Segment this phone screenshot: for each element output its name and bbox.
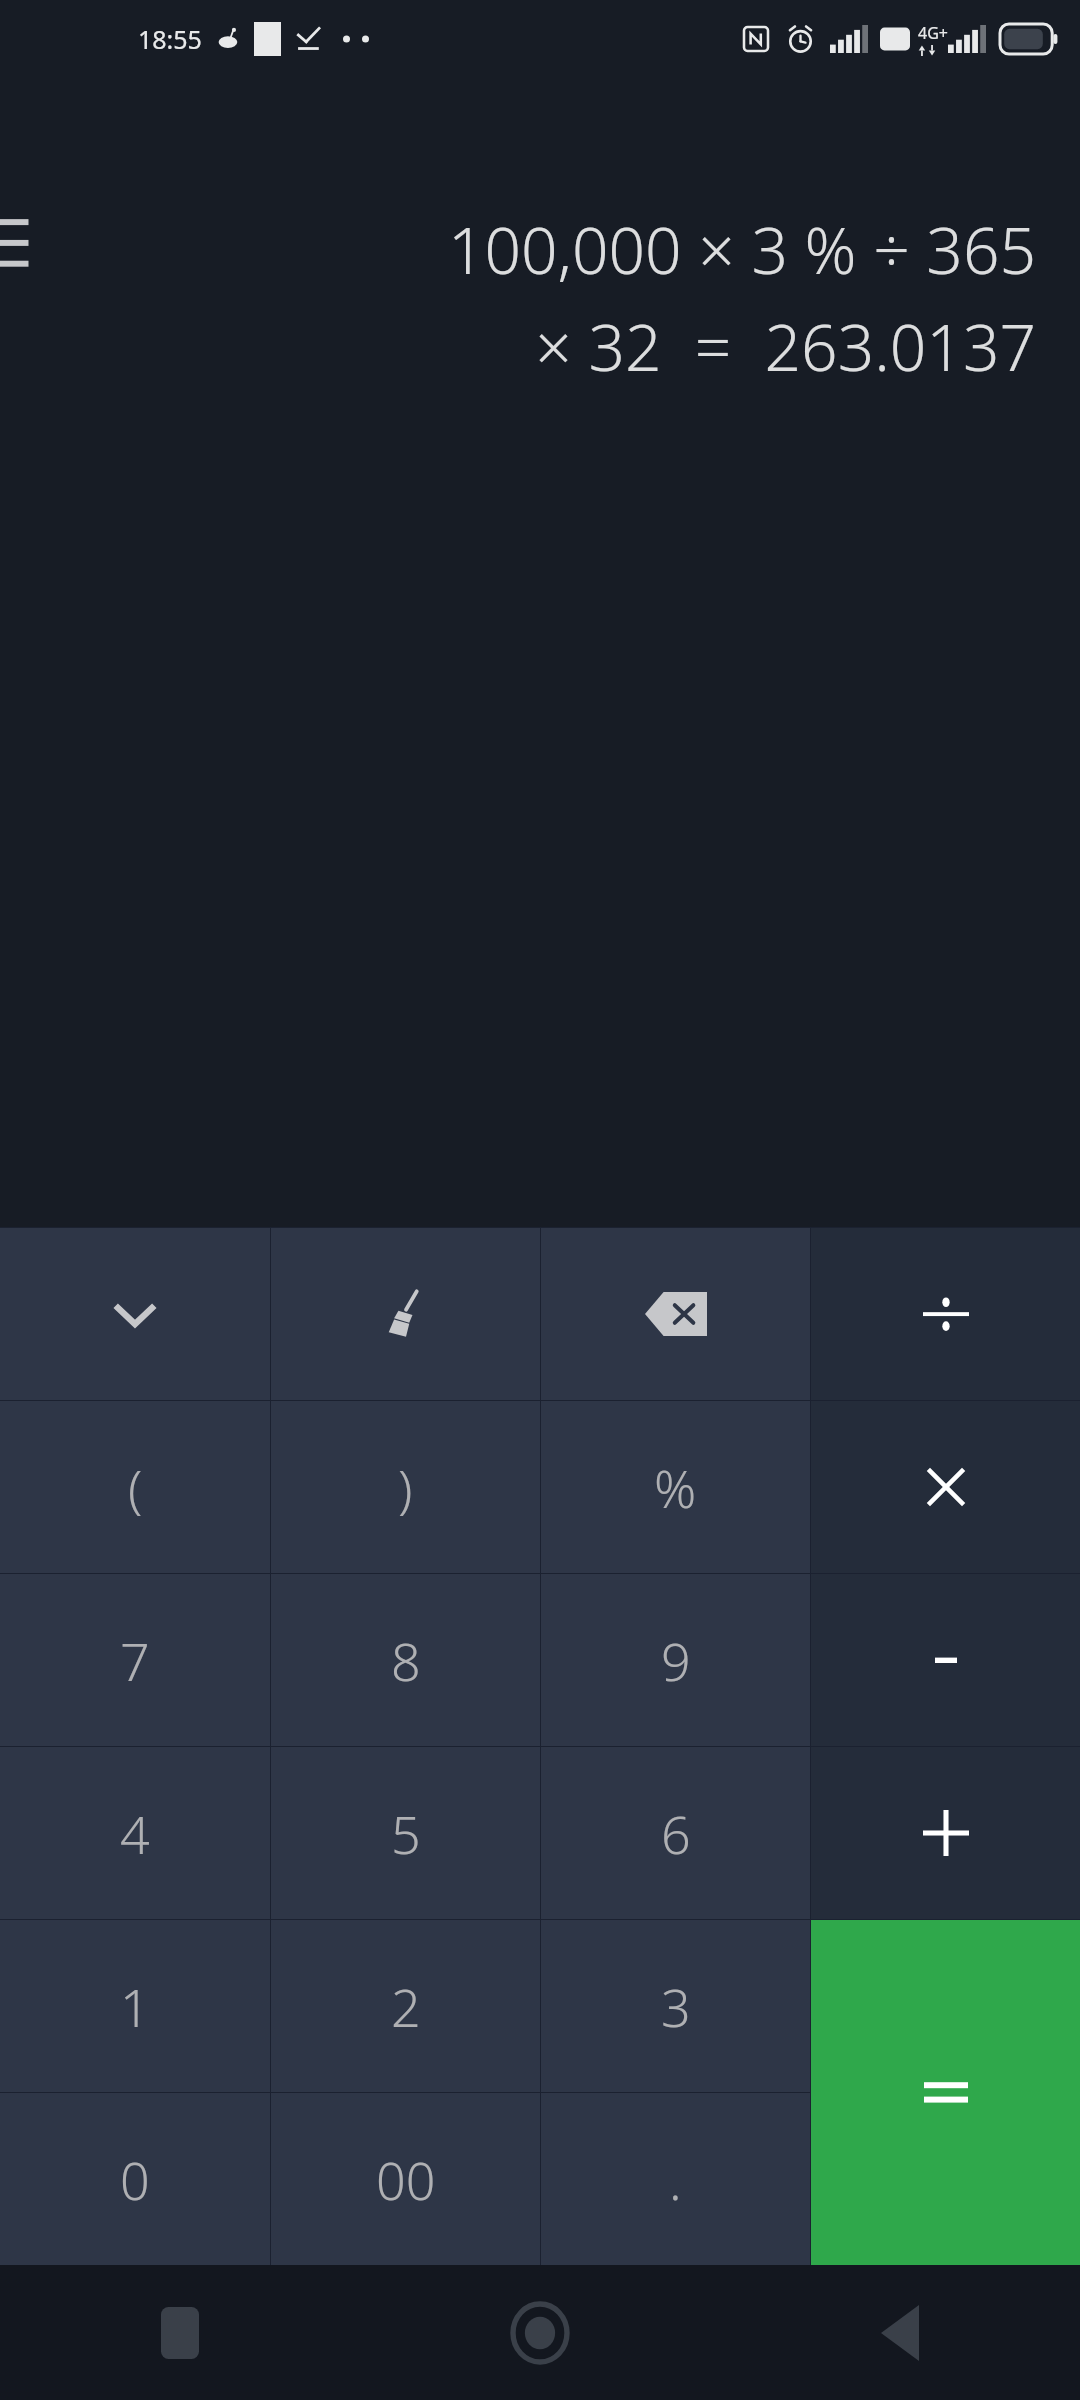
button[interactable]: Menu bbox=[0, 216, 30, 268]
staticText: ( bbox=[128, 1452, 143, 1523]
button[interactable]: Divide bbox=[811, 1228, 1080, 1400]
staticText: % bbox=[654, 1452, 697, 1523]
staticText: 100,000 × 3 % ÷ 365 bbox=[447, 206, 1036, 293]
button[interactable]: 00 bbox=[271, 2093, 540, 2265]
staticText: 8 bbox=[391, 1625, 421, 1696]
staticText: ) bbox=[398, 1452, 413, 1523]
button[interactable]: % bbox=[541, 1401, 810, 1573]
button[interactable]: Add bbox=[811, 1747, 1080, 1919]
button[interactable]: Clear all bbox=[271, 1228, 540, 1400]
button[interactable]: Backspace bbox=[541, 1228, 810, 1400]
button[interactable]: Equals bbox=[811, 1920, 1080, 2265]
button[interactable]: 8 bbox=[271, 1574, 540, 1746]
staticText: . bbox=[669, 2144, 682, 2215]
button[interactable]: 6 bbox=[541, 1747, 810, 1919]
staticText: 6 bbox=[661, 1798, 691, 1869]
button[interactable]: Multiply bbox=[811, 1401, 1080, 1573]
button[interactable]: 9 bbox=[541, 1574, 810, 1746]
staticText: 0 bbox=[120, 2144, 150, 2215]
button[interactable]: 5 bbox=[271, 1747, 540, 1919]
button[interactable]: Home bbox=[360, 2265, 720, 2400]
button[interactable]: 4 bbox=[0, 1747, 270, 1919]
button[interactable]: 3 bbox=[541, 1920, 810, 2092]
button[interactable]: 1 bbox=[0, 1920, 270, 2092]
button[interactable]: 2 bbox=[271, 1920, 540, 2092]
button[interactable]: ( bbox=[0, 1401, 270, 1573]
button[interactable]: Subtract bbox=[811, 1574, 1080, 1746]
staticText: 00 bbox=[376, 2144, 436, 2215]
staticText: 4G+ bbox=[918, 22, 948, 44]
staticText: 9 bbox=[661, 1625, 691, 1696]
button[interactable]: 7 bbox=[0, 1574, 270, 1746]
staticText: × 32 = 263.0137 bbox=[535, 303, 1036, 390]
staticText: 3 bbox=[661, 1971, 691, 2042]
staticText: 1 bbox=[120, 1971, 150, 2042]
button[interactable]: Collapse keypad bbox=[0, 1228, 270, 1400]
staticText: 7 bbox=[120, 1625, 150, 1696]
staticText: 4 bbox=[120, 1798, 150, 1869]
button[interactable]: Back bbox=[720, 2265, 1080, 2400]
staticText: 2 bbox=[391, 1971, 421, 2042]
button[interactable]: ) bbox=[271, 1401, 540, 1573]
button[interactable]: Recent apps bbox=[0, 2265, 360, 2400]
staticText: 5 bbox=[391, 1798, 421, 1869]
staticText: 18:55 bbox=[138, 22, 202, 56]
button[interactable]: 0 bbox=[0, 2093, 270, 2265]
